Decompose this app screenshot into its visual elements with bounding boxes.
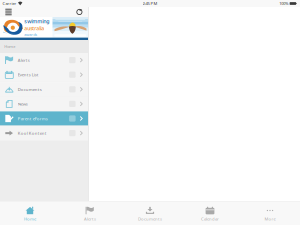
staticText: Alerts	[18, 57, 30, 63]
staticText: 2:45 PM	[142, 1, 157, 6]
staticText: News	[18, 101, 28, 107]
button[interactable]: Refresh	[71, 7, 87, 17]
staticText: Calendar	[201, 216, 219, 222]
button[interactable]: Events List	[0, 68, 88, 82]
staticText: Alerts	[84, 216, 96, 222]
button[interactable]: Documents	[0, 82, 88, 96]
button[interactable]: Kool Kontent	[0, 126, 88, 140]
button[interactable]: News	[0, 97, 88, 111]
button[interactable]: Home	[0, 201, 60, 225]
staticText: Carrier	[3, 1, 17, 6]
button[interactable]: Menu	[0, 7, 16, 17]
button[interactable]: Calendar	[180, 201, 240, 225]
staticText: Parent eForms	[18, 116, 48, 121]
staticText: Home	[4, 44, 15, 49]
staticText: swimming	[24, 17, 49, 25]
staticText: Documents	[138, 216, 162, 222]
staticText: More	[264, 216, 275, 222]
staticText: Documents	[18, 86, 42, 92]
staticText: australia	[24, 25, 44, 32]
button[interactable]: More	[240, 201, 300, 225]
staticText: Events List	[18, 72, 39, 77]
staticText: 100%	[279, 1, 288, 6]
staticText: awards	[24, 32, 37, 37]
button[interactable]: Documents	[120, 201, 180, 225]
button[interactable]: Parent eForms	[0, 111, 88, 126]
staticText: Home	[24, 216, 36, 222]
button[interactable]: Alerts	[0, 53, 88, 67]
staticText: Kool Kontent	[18, 130, 47, 136]
button[interactable]: Alerts	[60, 201, 120, 225]
